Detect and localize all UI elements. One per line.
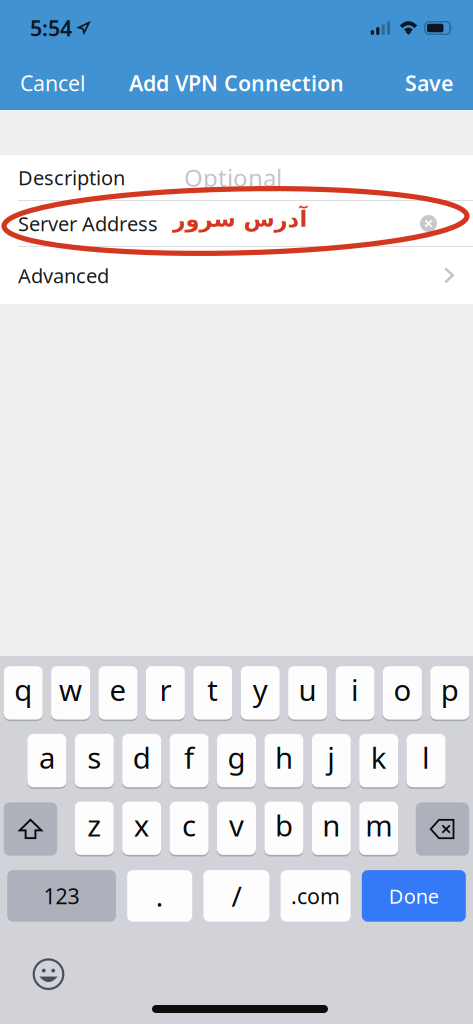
- button[interactable]: r: [146, 667, 185, 720]
- staticText: Done: [389, 883, 439, 909]
- staticText: Add VPN Connection: [129, 69, 344, 97]
- button[interactable]: t: [193, 667, 232, 720]
- button[interactable]: Cancel: [0, 58, 102, 108]
- staticText: z: [87, 806, 101, 845]
- button[interactable]: q: [4, 667, 43, 720]
- button[interactable]: m: [359, 802, 398, 856]
- button[interactable]: k: [359, 735, 398, 788]
- button[interactable]: 123: [7, 870, 116, 922]
- staticText: y: [253, 670, 268, 709]
- button[interactable]: g: [217, 735, 256, 788]
- staticText: Advanced: [18, 262, 109, 289]
- staticText: .com: [291, 882, 340, 910]
- staticText: f: [184, 738, 194, 777]
- staticText: e: [109, 670, 126, 709]
- button[interactable]: u: [288, 667, 327, 720]
- staticText: آدرس سرور: [172, 206, 307, 232]
- button[interactable]: Delete: [416, 802, 469, 856]
- staticText: r: [159, 670, 171, 709]
- button[interactable]: i: [335, 667, 374, 720]
- staticText: 5:54: [30, 14, 72, 42]
- button[interactable]: Description: [0, 155, 473, 200]
- staticText: c: [182, 806, 196, 845]
- button[interactable]: Server Address: [0, 201, 473, 246]
- staticText: Description: [18, 164, 125, 191]
- button[interactable]: c: [170, 802, 209, 856]
- staticText: v: [229, 806, 244, 845]
- staticText: j: [327, 738, 335, 777]
- staticText: o: [393, 670, 411, 709]
- staticText: b: [275, 806, 293, 845]
- button[interactable]: .com: [281, 870, 351, 922]
- button[interactable]: n: [312, 802, 351, 856]
- button[interactable]: z: [75, 802, 114, 856]
- staticText: n: [322, 806, 340, 845]
- button[interactable]: h: [264, 735, 303, 788]
- staticText: /: [231, 877, 241, 914]
- button[interactable]: .: [127, 870, 192, 922]
- button[interactable]: d: [122, 735, 161, 788]
- staticText: Server Address: [18, 210, 158, 237]
- staticText: h: [275, 738, 293, 777]
- staticText: i: [351, 670, 359, 709]
- staticText: g: [227, 738, 245, 777]
- button[interactable]: b: [264, 802, 303, 856]
- staticText: t: [207, 670, 218, 709]
- staticText: Cancel: [20, 69, 86, 97]
- button[interactable]: w: [51, 667, 90, 720]
- staticText: Optional: [184, 162, 282, 193]
- staticText: d: [133, 738, 151, 777]
- staticText: p: [441, 670, 459, 709]
- button[interactable]: o: [383, 667, 422, 720]
- button[interactable]: Advanced: [0, 247, 473, 304]
- button[interactable]: j: [312, 735, 351, 788]
- button[interactable]: l: [407, 735, 446, 788]
- staticText: .: [156, 877, 164, 914]
- staticText: x: [134, 806, 150, 845]
- button[interactable]: p: [430, 667, 469, 720]
- button[interactable]: Emoji keyboard: [32, 958, 64, 990]
- staticText: Save: [405, 69, 453, 97]
- button[interactable]: v: [217, 802, 256, 856]
- staticText: l: [422, 738, 430, 777]
- staticText: m: [365, 806, 392, 845]
- button[interactable]: f: [170, 735, 209, 788]
- button[interactable]: Save: [389, 58, 473, 108]
- button[interactable]: e: [98, 667, 137, 720]
- staticText: u: [299, 670, 317, 709]
- button[interactable]: x: [122, 802, 161, 856]
- staticText: k: [371, 738, 387, 777]
- button[interactable]: a: [27, 735, 66, 788]
- button[interactable]: /: [203, 870, 269, 922]
- button[interactable]: s: [75, 735, 114, 788]
- staticText: a: [39, 738, 55, 777]
- staticText: w: [59, 670, 82, 709]
- button[interactable]: y: [241, 667, 280, 720]
- staticText: 123: [44, 882, 80, 910]
- button[interactable]: Shift: [4, 802, 57, 856]
- staticText: s: [87, 738, 101, 777]
- staticText: q: [14, 670, 32, 709]
- button[interactable]: Done: [362, 870, 466, 922]
